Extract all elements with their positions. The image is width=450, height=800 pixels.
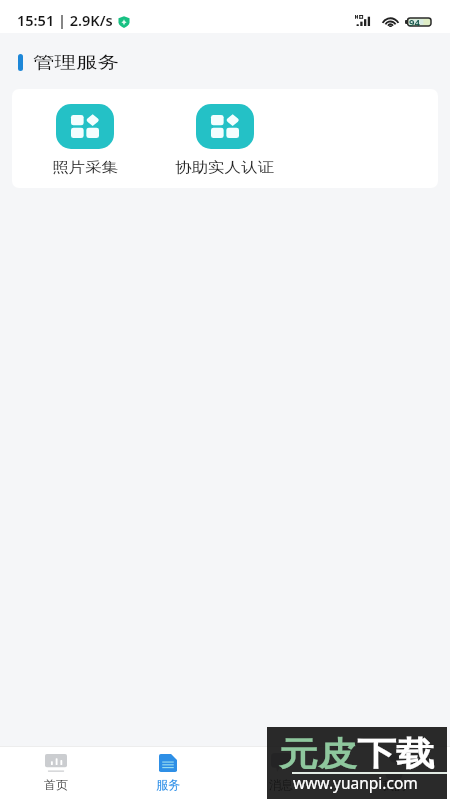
button[interactable]: 协助实人认证 bbox=[157, 89, 292, 188]
staticText: www.yuanpi.com bbox=[293, 772, 418, 793]
staticText: 94 bbox=[409, 16, 420, 28]
staticText: 下载 bbox=[357, 733, 435, 774]
button[interactable]: Services bbox=[112, 747, 224, 800]
staticText: 我的 bbox=[382, 778, 406, 793]
button[interactable]: Home bbox=[0, 747, 112, 800]
button[interactable]: 照片采集 bbox=[12, 89, 157, 188]
staticText: 元皮 bbox=[279, 733, 357, 774]
staticText: 管理服务 bbox=[33, 52, 119, 73]
button[interactable]: Profile bbox=[337, 747, 450, 800]
staticText: 15:51 | 2.9K/s bbox=[17, 10, 113, 30]
button[interactable]: Messages bbox=[224, 747, 337, 800]
staticText: 照片采集 bbox=[52, 159, 118, 176]
staticText: 消息 bbox=[269, 777, 293, 792]
staticText: 协助实人认证 bbox=[175, 159, 274, 176]
staticText: 首页 bbox=[44, 777, 68, 792]
staticText: 服务 bbox=[156, 777, 180, 792]
